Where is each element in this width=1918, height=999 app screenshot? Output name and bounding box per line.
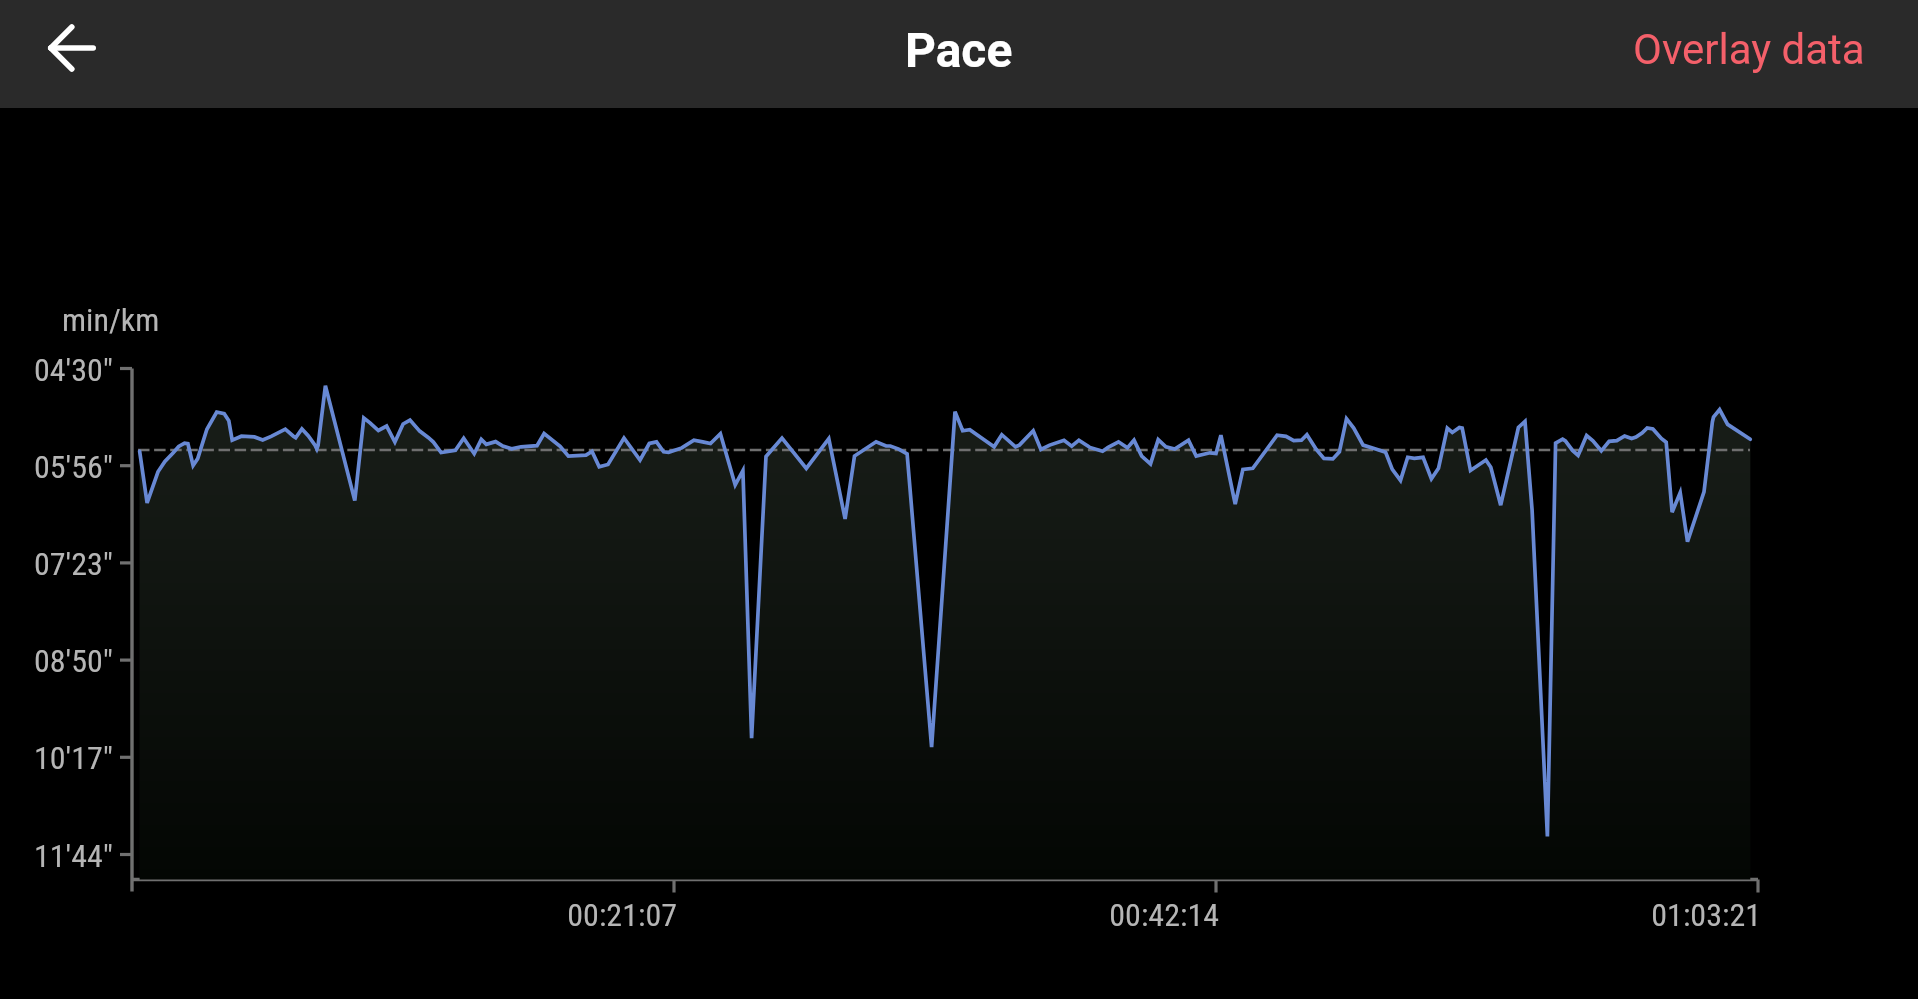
staticText: 11'44" [0, 837, 113, 875]
staticText: Overlay data [1633, 25, 1865, 74]
staticText: 00:21:07 [437, 896, 677, 934]
staticText: 00:42:14 [979, 896, 1219, 934]
staticText: 08'50" [0, 642, 113, 680]
button[interactable]: Back [24, 0, 120, 96]
staticText: min/km [62, 301, 160, 339]
staticText: 05'56" [0, 448, 113, 486]
staticText: 07'23" [0, 545, 113, 583]
staticText: 01:03:21 [1521, 896, 1761, 934]
staticText: Pace [905, 22, 1013, 78]
staticText: 04'30" [0, 351, 113, 389]
staticText: 10'17" [0, 739, 113, 777]
button[interactable]: Overlay data [1609, 15, 1918, 93]
